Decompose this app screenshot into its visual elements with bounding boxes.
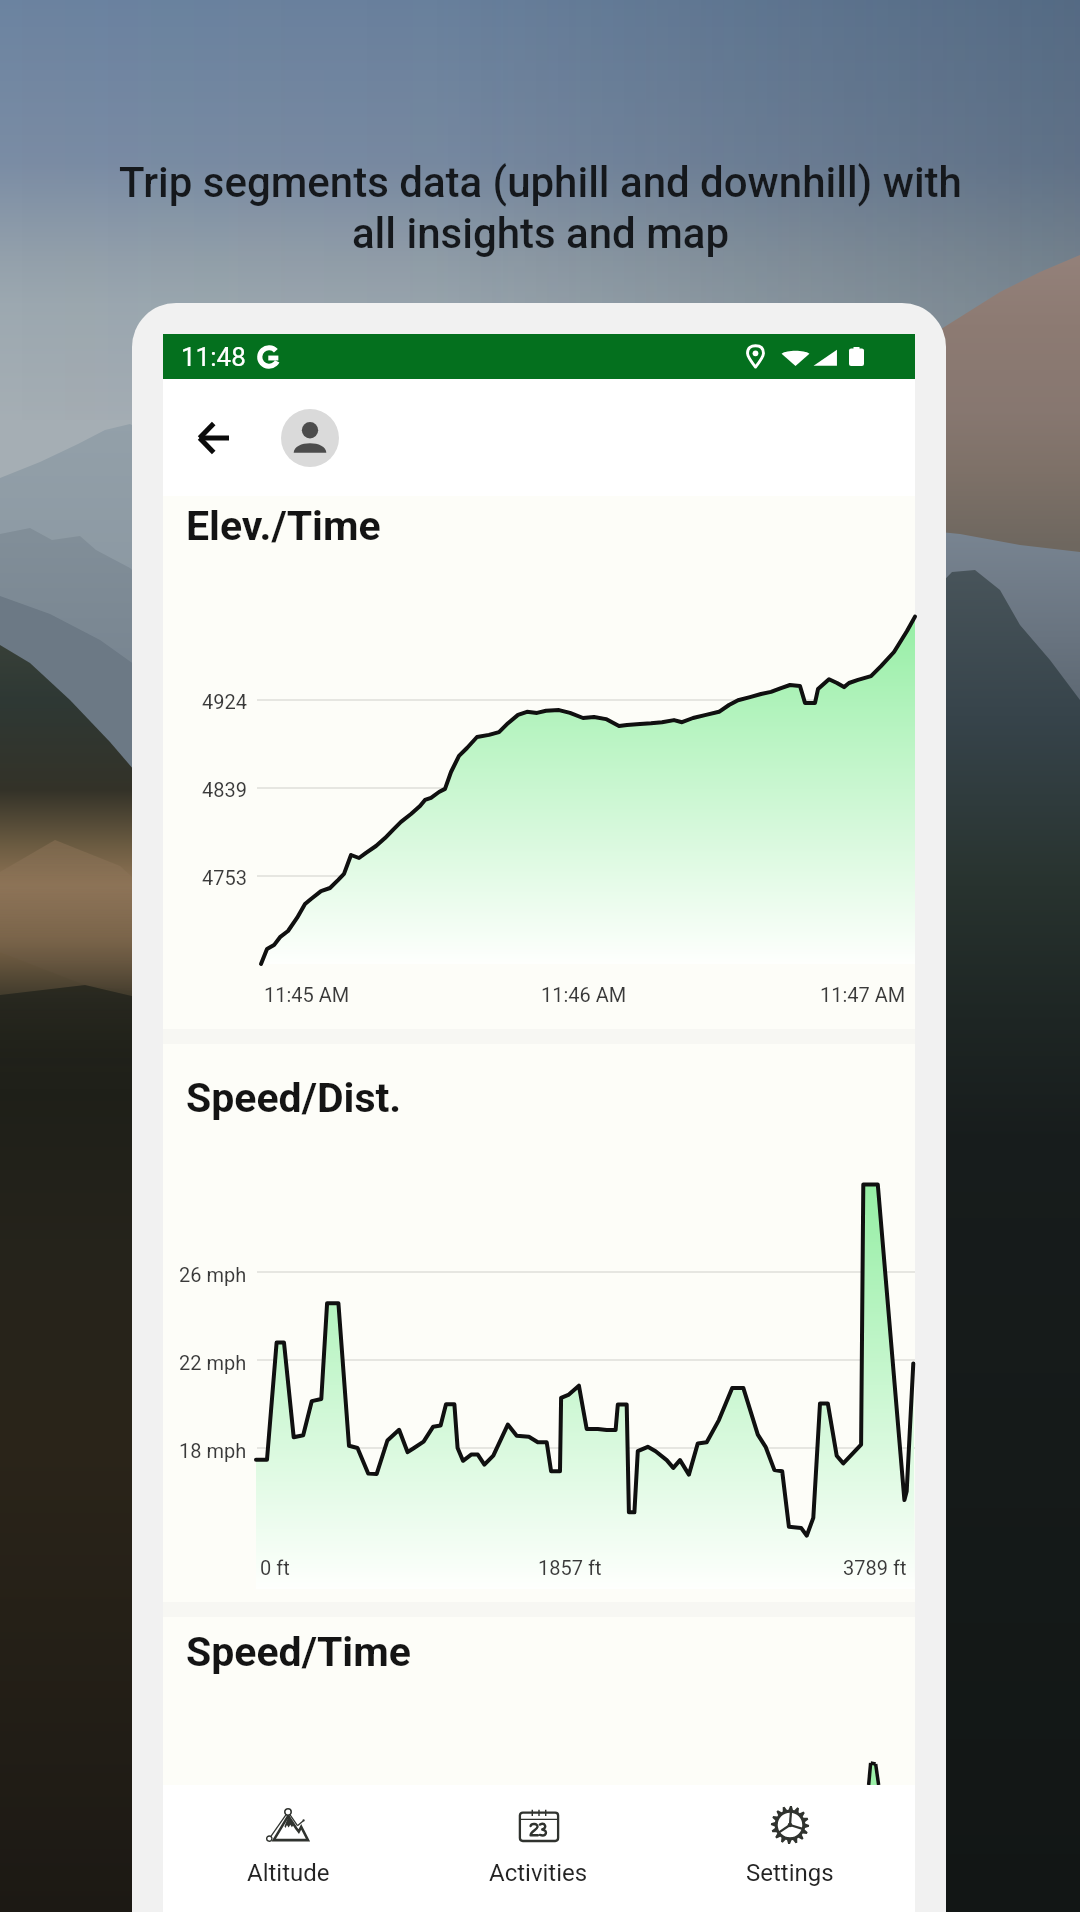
staticText: 11:47 AM bbox=[820, 983, 906, 1006]
staticText: 3789 ft bbox=[843, 1556, 907, 1579]
staticText: 4924 bbox=[202, 690, 247, 713]
button[interactable]: Altitude bbox=[163, 1785, 413, 1912]
button[interactable]: Activities bbox=[413, 1785, 664, 1912]
staticText: 4839 bbox=[202, 778, 247, 801]
staticText: Settings bbox=[746, 1859, 834, 1887]
staticText: Speed/Dist. bbox=[186, 1074, 402, 1122]
staticText: 1857 ft bbox=[538, 1556, 602, 1579]
staticText: 11:46 AM bbox=[541, 983, 627, 1006]
staticText: Speed/Time bbox=[186, 1628, 411, 1676]
button[interactable]: Account bbox=[281, 409, 339, 467]
staticText: 0 ft bbox=[260, 1556, 290, 1579]
staticText: Activities bbox=[489, 1859, 588, 1887]
staticText: 26 mph bbox=[179, 1263, 247, 1286]
button[interactable]: Settings bbox=[664, 1785, 915, 1912]
button[interactable]: Back bbox=[176, 400, 252, 476]
staticText: 22 mph bbox=[179, 1351, 247, 1374]
staticText: 11:45 AM bbox=[264, 983, 350, 1006]
staticText: 4753 bbox=[202, 866, 247, 889]
staticText: Altitude bbox=[247, 1859, 330, 1887]
staticText: 18 mph bbox=[179, 1439, 247, 1462]
staticText: Trip segments data (uphill and downhill)… bbox=[119, 158, 962, 259]
staticText: 11:48 bbox=[181, 342, 246, 372]
staticText: Elev./Time bbox=[186, 502, 381, 550]
